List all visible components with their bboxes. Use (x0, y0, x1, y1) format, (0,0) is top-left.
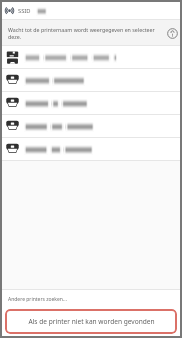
staticText: SSID (18, 7, 31, 15)
button[interactable] (2, 92, 180, 114)
button[interactable] (2, 138, 180, 160)
staticText: Als de printer niet kan worden gevonden (28, 317, 155, 326)
staticText: Wacht tot de printernaam wordt weergegev… (8, 26, 163, 40)
staticText: Andere printers zoeken... (8, 296, 67, 303)
button[interactable]: Als de printer niet kan worden gevonden (5, 309, 177, 334)
button[interactable]: Andere printers zoeken... (2, 290, 180, 309)
button[interactable] (2, 69, 180, 91)
button[interactable]: SSID (2, 2, 180, 19)
button[interactable]: Help (165, 26, 179, 40)
button[interactable] (2, 115, 180, 137)
button[interactable] (2, 46, 180, 68)
